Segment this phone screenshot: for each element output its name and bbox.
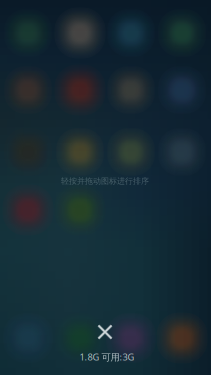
staticText: 1.8G 可用:3G bbox=[79, 351, 134, 363]
button[interactable]: Close all bbox=[90, 317, 120, 347]
staticText: 轻按并拖动图标进行排序 bbox=[61, 176, 149, 186]
